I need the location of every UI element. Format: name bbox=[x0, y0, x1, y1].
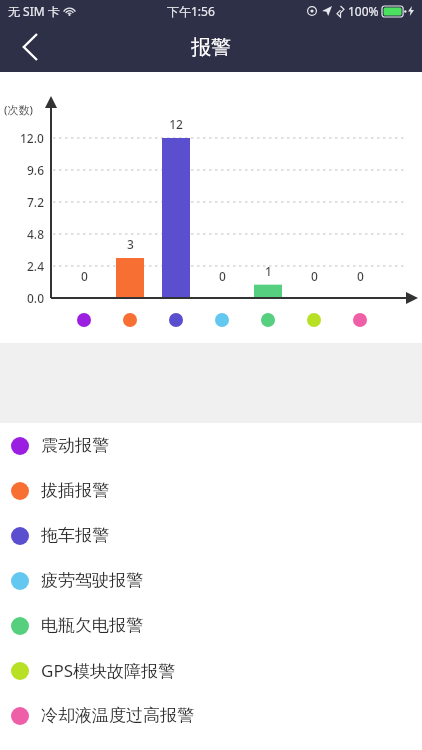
staticText: 0 bbox=[357, 268, 364, 284]
staticText: 4.8 bbox=[27, 226, 44, 242]
staticText: 下午1:56 bbox=[167, 3, 215, 19]
staticText: GPS模块故障报警 bbox=[41, 659, 175, 682]
staticText: 9.6 bbox=[27, 162, 44, 178]
button[interactable]: Back bbox=[0, 22, 60, 72]
staticText: 冷却液温度过高报警 bbox=[41, 705, 194, 726]
button[interactable]: 疲劳驾驶报警 bbox=[0, 558, 422, 603]
staticText: 无 SIM 卡 bbox=[8, 3, 60, 19]
staticText: 3 bbox=[127, 236, 134, 252]
staticText: 0.0 bbox=[27, 290, 44, 306]
staticText: (次数) bbox=[4, 102, 33, 117]
button[interactable]: 拖车报警 bbox=[0, 513, 422, 558]
staticText: 0 bbox=[219, 268, 226, 284]
button[interactable]: 电瓶欠电报警 bbox=[0, 603, 422, 648]
staticText: 100% bbox=[348, 3, 379, 19]
staticText: 震动报警 bbox=[41, 435, 109, 456]
staticText: 报警 bbox=[191, 35, 231, 60]
button[interactable]: 冷却液温度过高报警 bbox=[0, 693, 422, 738]
staticText: 1 bbox=[265, 263, 272, 279]
staticText: 0 bbox=[311, 268, 318, 284]
staticText: 疲劳驾驶报警 bbox=[41, 570, 143, 591]
button[interactable]: 震动报警 bbox=[0, 423, 422, 468]
staticText: 12 bbox=[169, 116, 183, 132]
staticText: 7.2 bbox=[27, 194, 44, 210]
staticText: 0 bbox=[81, 268, 88, 284]
staticText: 拖车报警 bbox=[41, 525, 109, 546]
staticText: 12.0 bbox=[20, 130, 44, 146]
staticText: 2.4 bbox=[27, 258, 44, 274]
staticText: 拔插报警 bbox=[41, 480, 109, 501]
button[interactable]: 拔插报警 bbox=[0, 468, 422, 513]
button[interactable]: GPS模块故障报警 bbox=[0, 648, 422, 693]
staticText: 电瓶欠电报警 bbox=[41, 615, 143, 636]
